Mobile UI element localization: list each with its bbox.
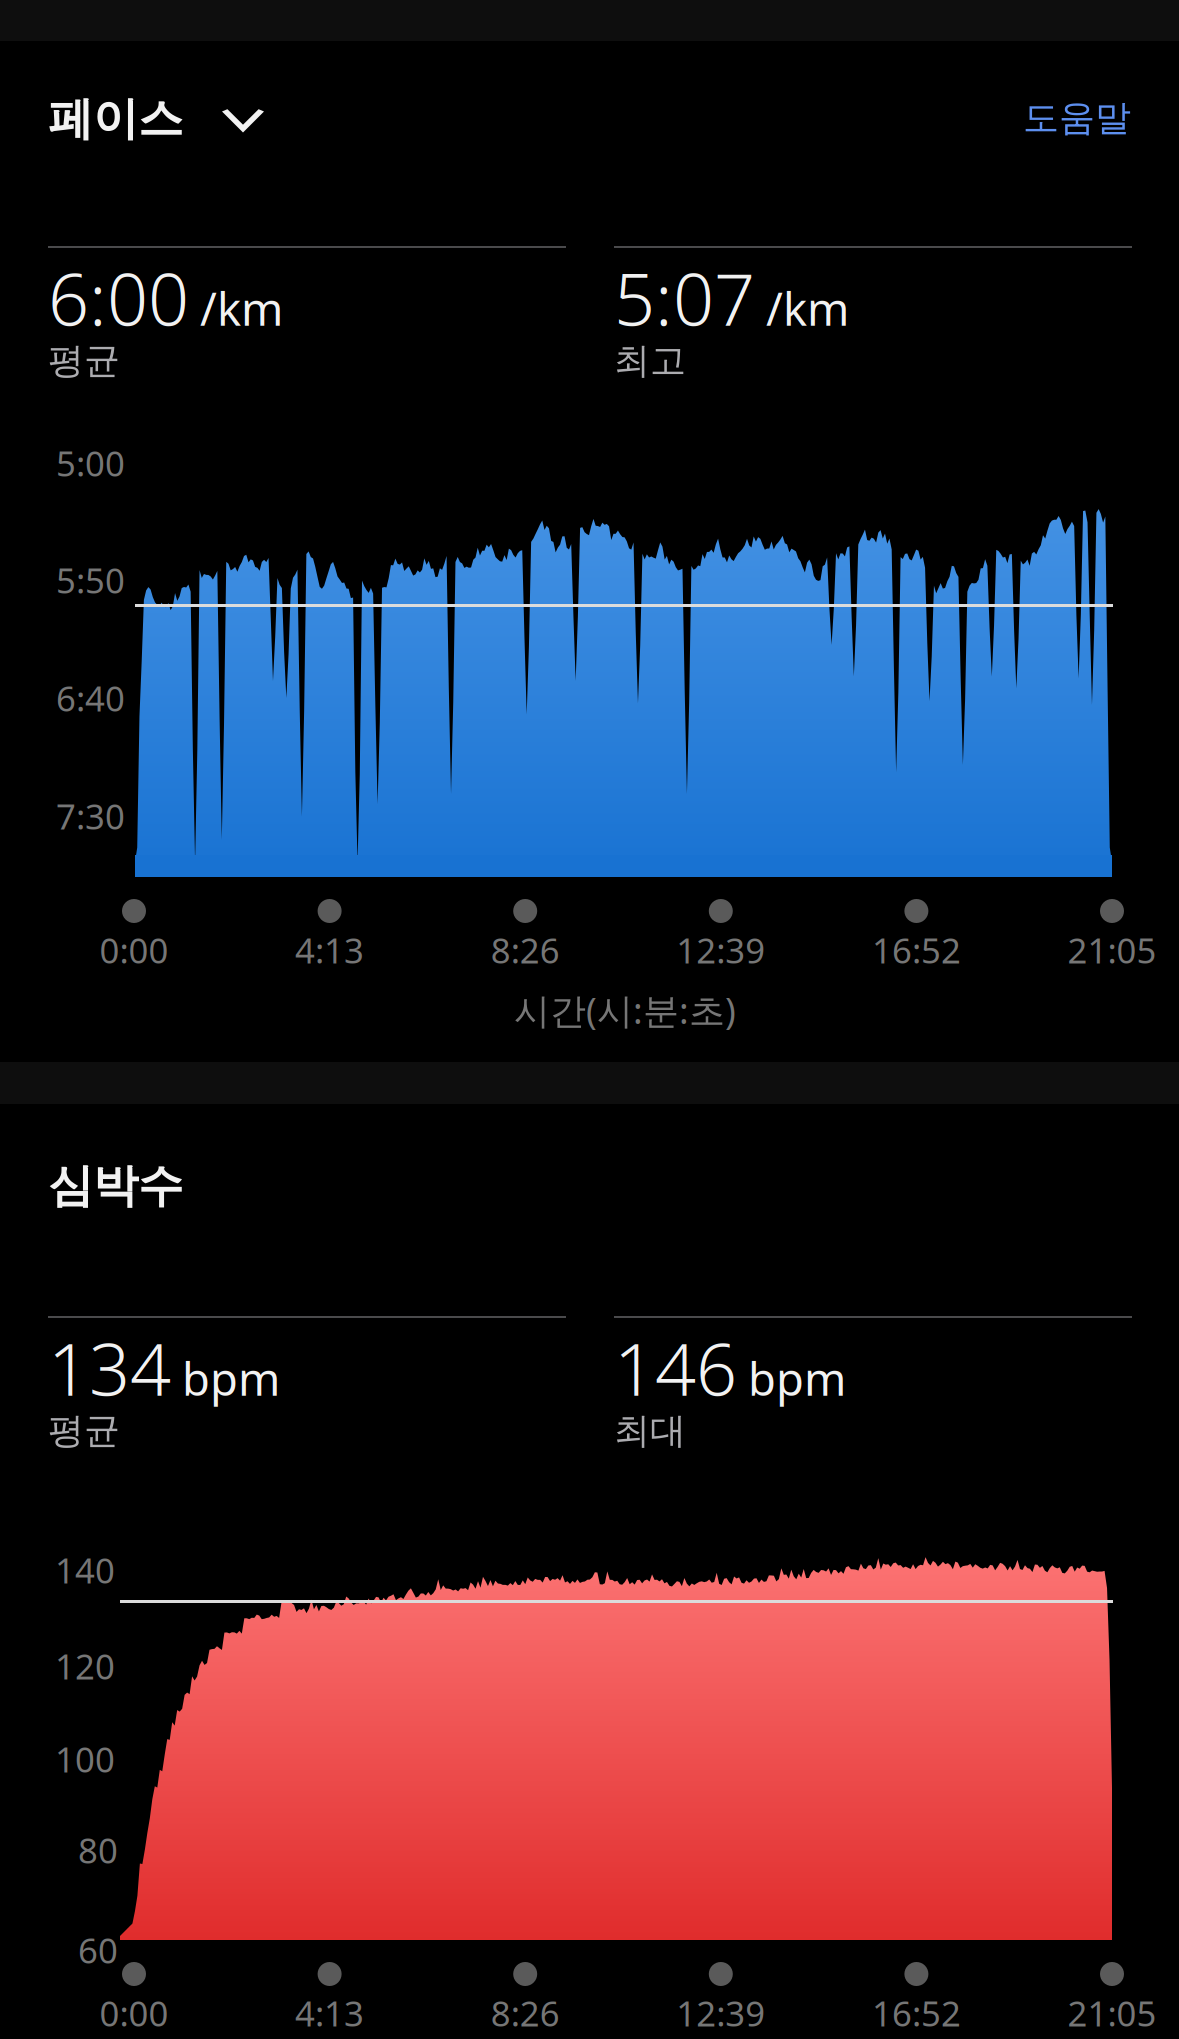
staticText: 평균: [48, 1409, 120, 1453]
staticText: 6:40: [56, 675, 125, 721]
staticText: 8:26: [491, 927, 560, 973]
staticText: 60: [78, 1927, 118, 1973]
staticText: 21:05: [1067, 1990, 1156, 2036]
staticText: 최고: [614, 339, 686, 383]
staticText: /km: [200, 278, 283, 338]
staticText: 페이스: [48, 91, 183, 147]
staticText: 심박수: [48, 1158, 183, 1214]
staticText: 5:50: [56, 557, 125, 603]
staticText: 16:52: [872, 927, 961, 973]
staticText: 140: [55, 1547, 115, 1593]
staticText: 12:39: [676, 1990, 765, 2036]
staticText: 100: [55, 1736, 115, 1782]
staticText: 0:00: [99, 1990, 168, 2036]
staticText: 평균: [48, 339, 120, 383]
staticText: bpm: [182, 1348, 280, 1408]
staticText: 5:07: [614, 250, 755, 346]
staticText: 최대: [614, 1409, 686, 1453]
staticText: 5:00: [56, 440, 125, 486]
staticText: 4:13: [295, 927, 364, 973]
staticText: 21:05: [1067, 927, 1156, 973]
staticText: 6:00: [48, 250, 189, 346]
staticText: 12:39: [676, 927, 765, 973]
staticText: 7:30: [56, 793, 125, 839]
staticText: 16:52: [872, 1990, 961, 2036]
staticText: 8:26: [491, 1990, 560, 2036]
staticText: 시간(시:분:초): [514, 986, 736, 1034]
staticText: 80: [78, 1827, 118, 1873]
button[interactable]: 페이스, 측정 항목 선택: [48, 67, 338, 171]
staticText: 0:00: [99, 927, 168, 973]
staticText: 도움말: [1023, 96, 1131, 140]
staticText: bpm: [748, 1348, 846, 1408]
staticText: /km: [766, 278, 849, 338]
staticText: 120: [55, 1643, 115, 1689]
button[interactable]: 도움말: [931, 73, 1131, 163]
staticText: 146: [614, 1320, 737, 1416]
staticText: 4:13: [295, 1990, 364, 2036]
staticText: 134: [48, 1320, 171, 1416]
